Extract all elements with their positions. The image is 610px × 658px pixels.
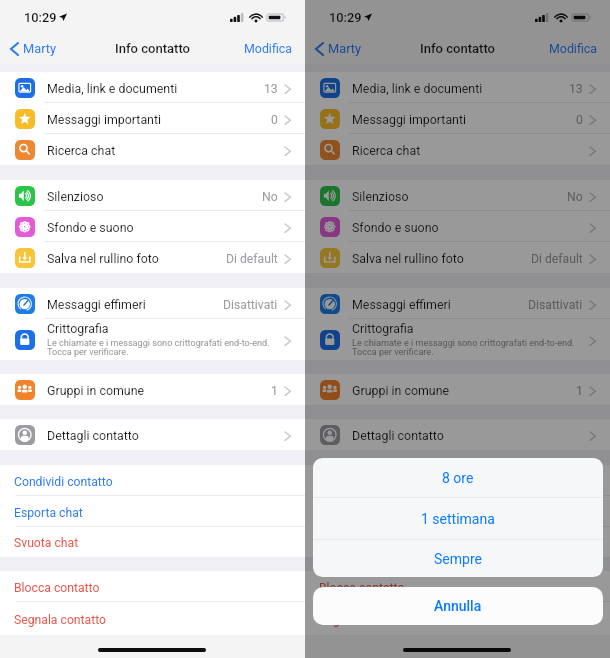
staticText: 10:29 — [329, 10, 362, 25]
button[interactable]: Esporta chat — [0, 496, 305, 527]
staticText: Info contatto — [420, 41, 496, 56]
staticText: Crittografia — [352, 321, 414, 336]
button[interactable]: Svuota chat — [305, 527, 610, 557]
staticText: Svuota chat — [14, 536, 79, 550]
staticText: Crittografia — [47, 321, 109, 336]
staticText: Media, link e documenti — [47, 81, 178, 96]
staticText: 10:29 — [24, 10, 57, 25]
staticText: Dettagli contatto — [47, 428, 139, 443]
button[interactable]: 8 ore — [313, 458, 603, 497]
button[interactable]: 1 settimana — [313, 498, 603, 539]
staticText: Messaggi importanti — [47, 112, 162, 127]
button[interactable]: Dettagli contatto — [0, 419, 305, 450]
button[interactable]: Silenzioso — [305, 180, 610, 211]
button[interactable]: Segnala contatto — [305, 602, 610, 635]
staticText: Info contatto — [115, 41, 191, 56]
staticText: Condividi contatto — [14, 475, 113, 489]
staticText: Le chiamate e i messaggi sono crittograf… — [47, 338, 270, 358]
staticText: Segnala contatto — [319, 613, 412, 627]
staticText: Segnala contatto — [14, 613, 107, 627]
staticText: Di default — [226, 252, 278, 266]
staticText: Silenzioso — [47, 189, 104, 204]
staticText: Svuota chat — [319, 536, 384, 550]
staticText: Ricerca chat — [352, 143, 421, 158]
staticText: No — [567, 190, 583, 204]
button[interactable]: Marty — [7, 37, 61, 60]
staticText: Di default — [531, 252, 583, 266]
button[interactable]: Salva nel rullino foto — [305, 242, 610, 273]
staticText: Marty — [328, 41, 362, 56]
button[interactable]: Blocca contatto — [0, 571, 305, 602]
button[interactable]: Gruppi in comune — [0, 374, 305, 405]
button[interactable]: Modifica — [545, 37, 601, 60]
staticText: 13 — [264, 82, 278, 96]
staticText: Disattivati — [528, 298, 583, 312]
button[interactable]: Dettagli contatto — [305, 419, 610, 450]
staticText: Dettagli contatto — [352, 428, 444, 443]
staticText: Modifica — [549, 41, 597, 56]
staticText: Messaggi effimeri — [352, 297, 451, 312]
staticText: Messaggi importanti — [352, 112, 467, 127]
staticText: No — [262, 190, 278, 204]
staticText: Gruppi in comune — [352, 383, 450, 398]
button[interactable]: Messaggi importanti — [305, 103, 610, 134]
staticText: 1 — [576, 384, 583, 398]
button[interactable]: Condividi contatto — [0, 465, 305, 496]
button[interactable]: Crittografia — [305, 319, 610, 360]
staticText: 0 — [271, 113, 278, 127]
staticText: Gruppi in comune — [47, 383, 145, 398]
staticText: 8 ore — [442, 470, 474, 486]
staticText: Marty — [23, 41, 57, 56]
staticText: Salva nel rullino foto — [352, 251, 464, 266]
button[interactable]: Crittografia — [0, 319, 305, 360]
button[interactable]: Esporta chat — [305, 496, 610, 527]
staticText: Blocca contatto — [319, 581, 405, 595]
staticText: Annulla — [434, 598, 482, 614]
button[interactable]: Media, link e documenti — [305, 72, 610, 103]
button[interactable]: Svuota chat — [0, 527, 305, 557]
staticText: Le chiamate e i messaggi sono crittograf… — [352, 338, 575, 358]
button[interactable]: Marty — [312, 37, 366, 60]
button[interactable]: Messaggi importanti — [0, 103, 305, 134]
staticText: Sfondo e suono — [352, 220, 439, 235]
button[interactable]: Silenzioso — [0, 180, 305, 211]
staticText: Modifica — [244, 41, 292, 56]
staticText: 1 settimana — [421, 511, 495, 527]
button[interactable]: Ricerca chat — [0, 134, 305, 165]
staticText: Media, link e documenti — [352, 81, 483, 96]
button[interactable]: Annulla — [313, 587, 603, 625]
staticText: 13 — [569, 82, 583, 96]
staticText: Silenzioso — [352, 189, 409, 204]
button[interactable]: Gruppi in comune — [305, 374, 610, 405]
button[interactable]: Sfondo e suono — [0, 211, 305, 242]
button[interactable]: Sfondo e suono — [305, 211, 610, 242]
staticText: Blocca contatto — [14, 581, 100, 595]
staticText: Esporta chat — [14, 506, 83, 520]
staticText: Salva nel rullino foto — [47, 251, 159, 266]
staticText: Sfondo e suono — [47, 220, 134, 235]
staticText: Ricerca chat — [47, 143, 116, 158]
button[interactable]: Messaggi effimeri — [0, 288, 305, 319]
button[interactable]: Ricerca chat — [305, 134, 610, 165]
staticText: Disattivati — [223, 298, 278, 312]
button[interactable]: Condividi contatto — [305, 465, 610, 496]
staticText: 1 — [271, 384, 278, 398]
staticText: Sempre — [434, 551, 482, 567]
button[interactable]: Modifica — [240, 37, 296, 60]
button[interactable]: Segnala contatto — [0, 602, 305, 635]
button[interactable]: Media, link e documenti — [0, 72, 305, 103]
staticText: 0 — [576, 113, 583, 127]
button[interactable]: Messaggi effimeri — [305, 288, 610, 319]
staticText: Messaggi effimeri — [47, 297, 146, 312]
button[interactable]: Blocca contatto — [305, 571, 610, 602]
button[interactable]: Salva nel rullino foto — [0, 242, 305, 273]
button[interactable]: Sempre — [313, 540, 603, 577]
